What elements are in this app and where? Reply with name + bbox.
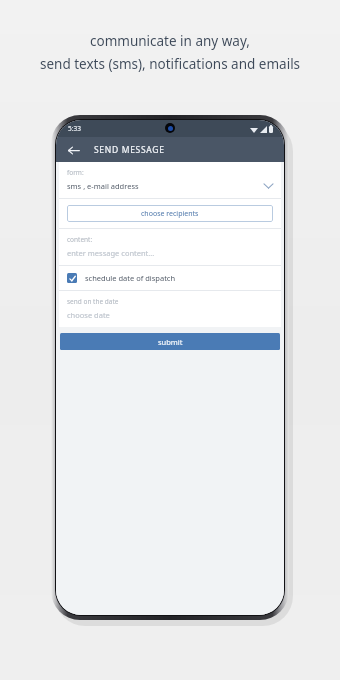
staticText: choose date — [67, 310, 110, 320]
button[interactable]: Back — [62, 139, 84, 161]
button[interactable]: form: — [59, 162, 281, 198]
staticText: schedule date of dispatch — [85, 273, 176, 283]
button[interactable]: choose recipients — [67, 205, 273, 222]
staticText: enter message content... — [67, 248, 155, 258]
staticText: send on the date — [67, 297, 119, 306]
button[interactable]: content: — [59, 229, 281, 265]
button[interactable]: schedule date of dispatch — [59, 266, 281, 290]
staticText: 5:33 — [68, 124, 81, 133]
staticText: sms , e-mail address — [67, 181, 139, 191]
button[interactable]: send on the date — [59, 291, 281, 327]
staticText: form: — [67, 168, 84, 177]
button[interactable]: submit — [60, 333, 280, 350]
staticText: submit — [158, 337, 183, 347]
staticText: content: — [67, 235, 93, 244]
staticText: send texts (sms), notifications and emai… — [40, 55, 301, 73]
staticText: communicate in any way, — [90, 32, 250, 50]
staticText: choose recipients — [141, 209, 199, 219]
staticText: SEND MESSAGE — [94, 144, 165, 156]
